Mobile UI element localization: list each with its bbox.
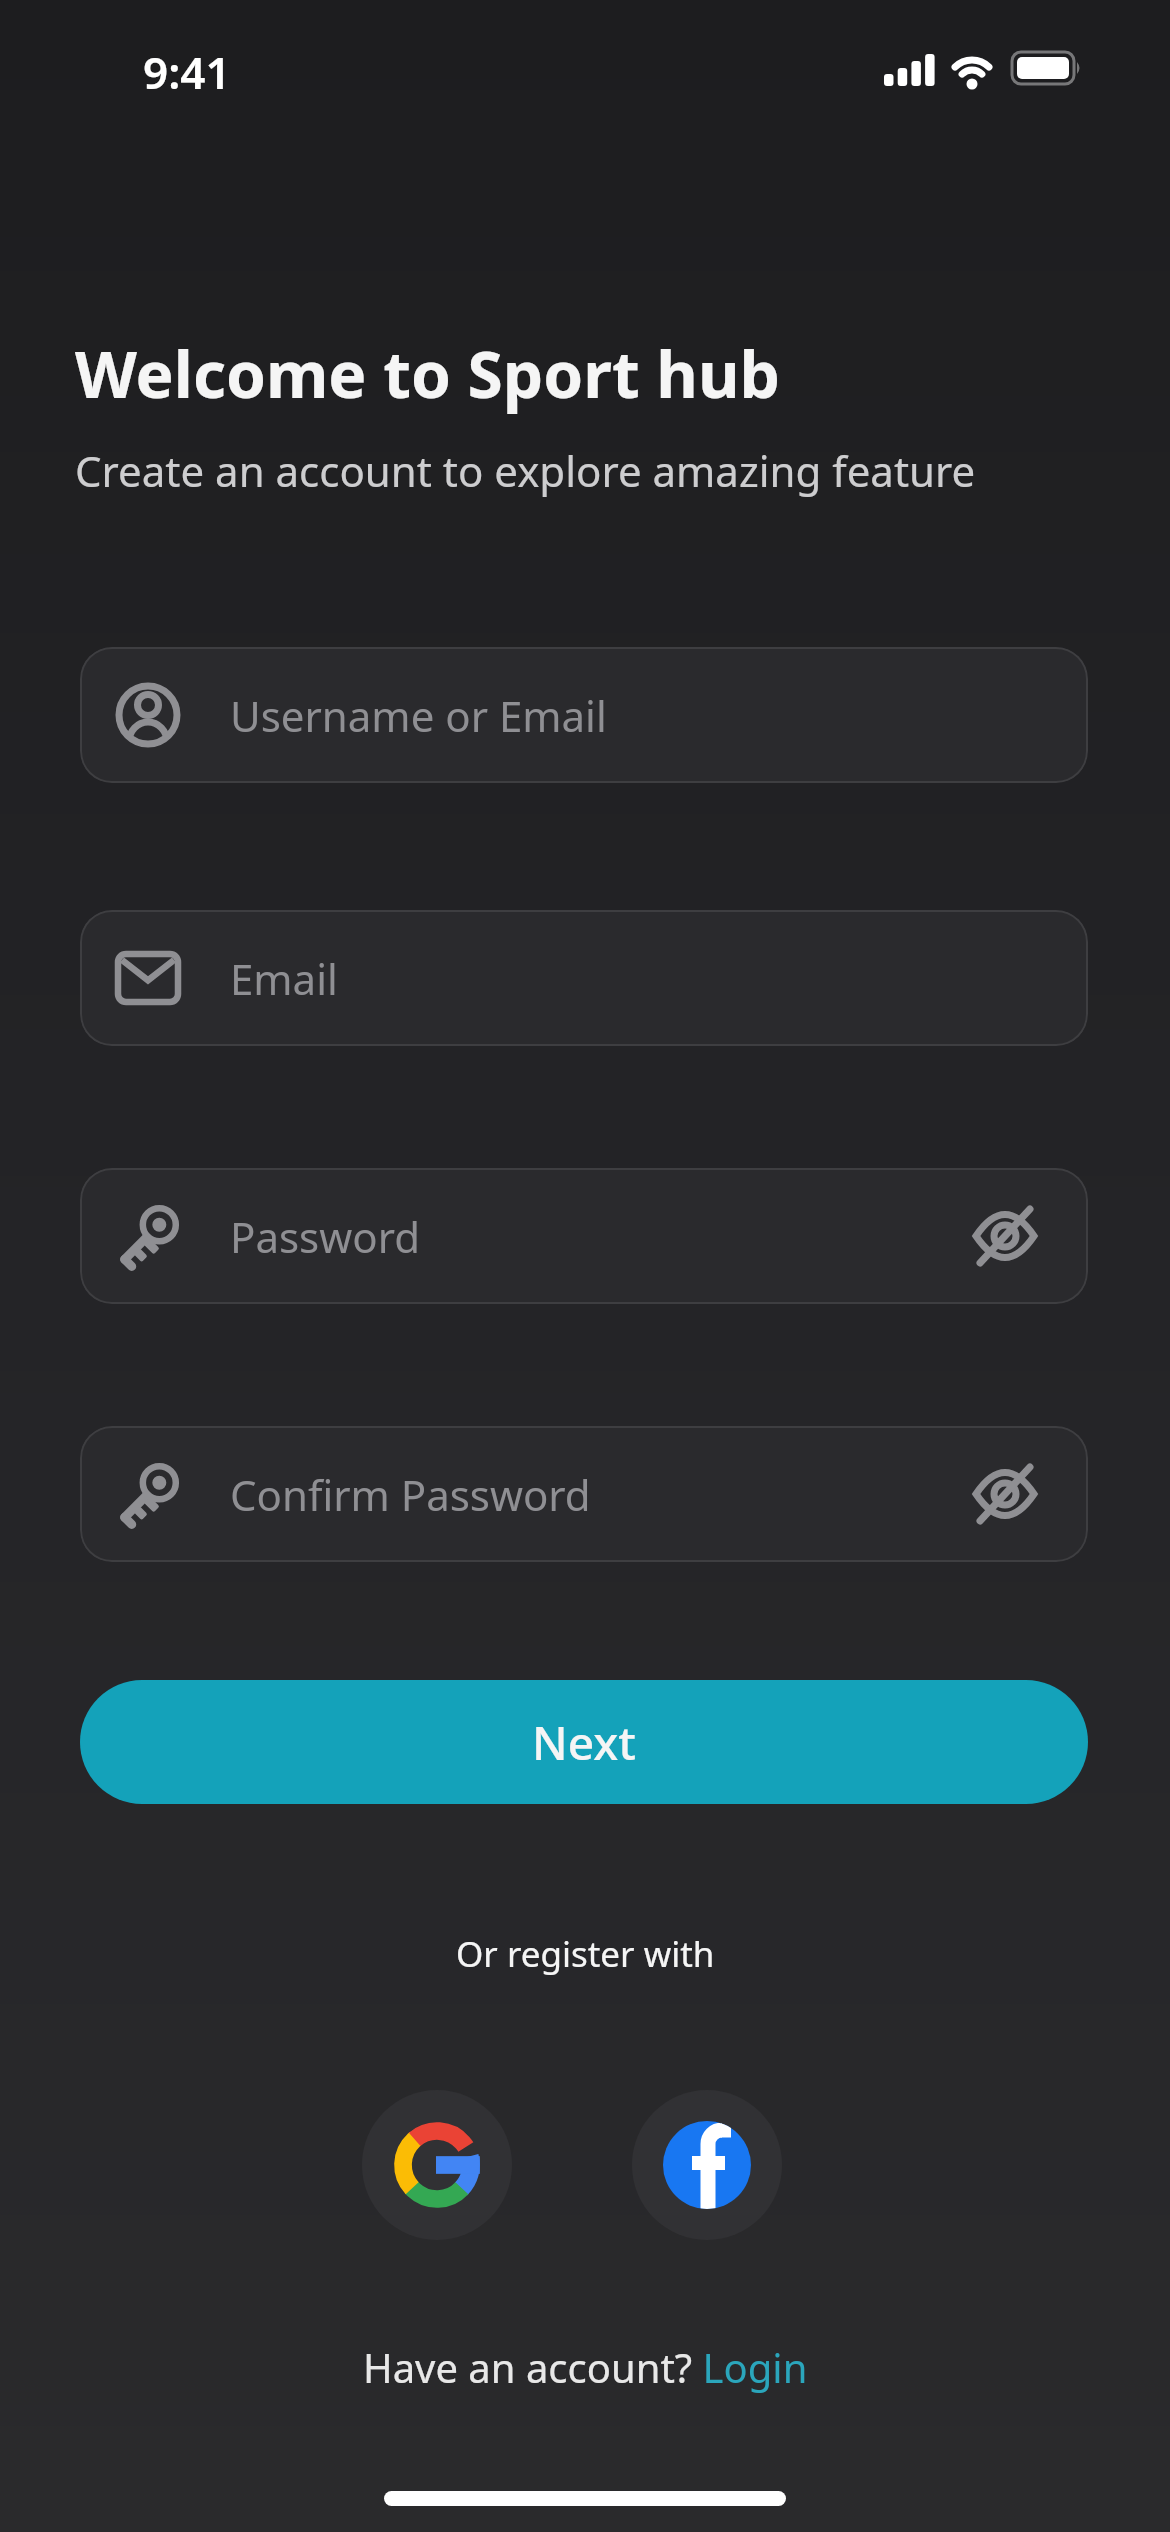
staticText: Username or Email: [230, 687, 607, 744]
staticText: Create an account to explore amazing fea…: [75, 442, 976, 499]
button[interactable]: Username or Email: [80, 647, 1088, 783]
staticText: Email: [230, 950, 338, 1007]
staticText: Confirm Password: [230, 1466, 591, 1523]
button[interactable]: Password: [80, 1168, 1088, 1304]
button[interactable]: [362, 2090, 512, 2240]
button[interactable]: Email: [80, 910, 1088, 1046]
staticText: Password: [230, 1208, 420, 1265]
button[interactable]: [632, 2090, 782, 2240]
button[interactable]: Have an account? Login: [363, 2340, 808, 2394]
staticText: Or register with: [456, 1930, 715, 1978]
button[interactable]: Confirm Password: [80, 1426, 1088, 1562]
button[interactable]: Next: [80, 1680, 1088, 1804]
staticText: Have an account? Login: [363, 2340, 808, 2394]
staticText: Next: [532, 1711, 636, 1774]
staticText: 9:41: [143, 42, 231, 102]
staticText: Welcome to Sport hub: [75, 330, 780, 417]
